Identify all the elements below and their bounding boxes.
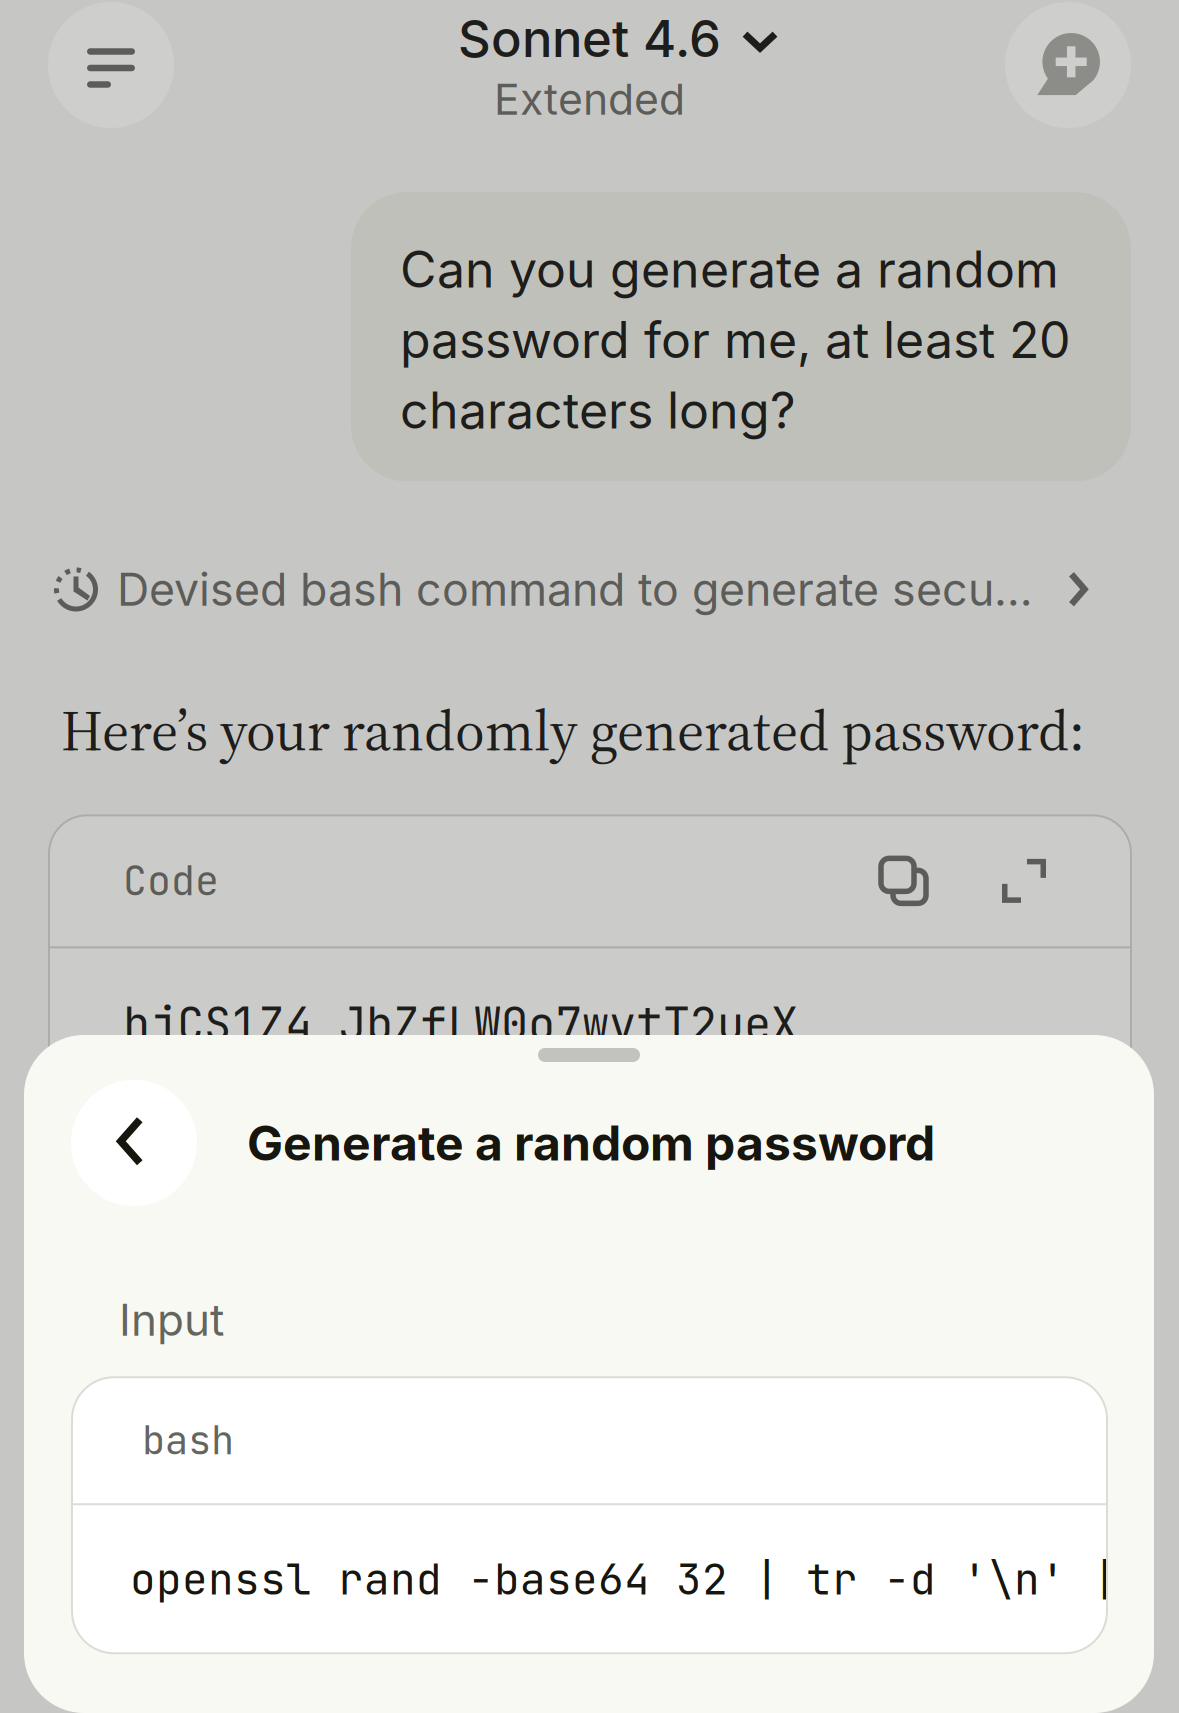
staticText: bash: [142, 1415, 234, 1466]
button[interactable]: Copy code: [875, 852, 932, 909]
button[interactable]: Open sidebar: [48, 2, 174, 128]
staticText: Sonnet 4.6: [458, 8, 721, 69]
staticText: password for me, at least 20: [400, 309, 1071, 370]
button[interactable]: Sonnet 4.6: [0, 0, 1179, 130]
button[interactable]: Back: [71, 1080, 197, 1206]
button[interactable]: New chat: [1005, 2, 1131, 128]
staticText: Code: [123, 854, 219, 907]
staticText: Input: [119, 1293, 224, 1346]
staticText: Extended: [494, 73, 685, 125]
staticText: Can you generate a random: [400, 239, 1059, 299]
button[interactable]: Devised bash command to generate secu…: [0, 561, 1179, 617]
staticText: Here’s your randomly generated password:: [61, 691, 1085, 769]
staticText: characters long?: [400, 380, 796, 440]
button[interactable]: Expand code: [996, 853, 1052, 909]
staticText: Generate a random password: [247, 1114, 935, 1172]
staticText: openssl rand -base64 32 | tr -d '\n' |: [130, 1551, 1118, 1607]
staticText: hjCS1Z4 JbZfLW0o7wvtT2ueX: [123, 994, 798, 1054]
staticText: Devised bash command to generate secu…: [117, 562, 1033, 616]
